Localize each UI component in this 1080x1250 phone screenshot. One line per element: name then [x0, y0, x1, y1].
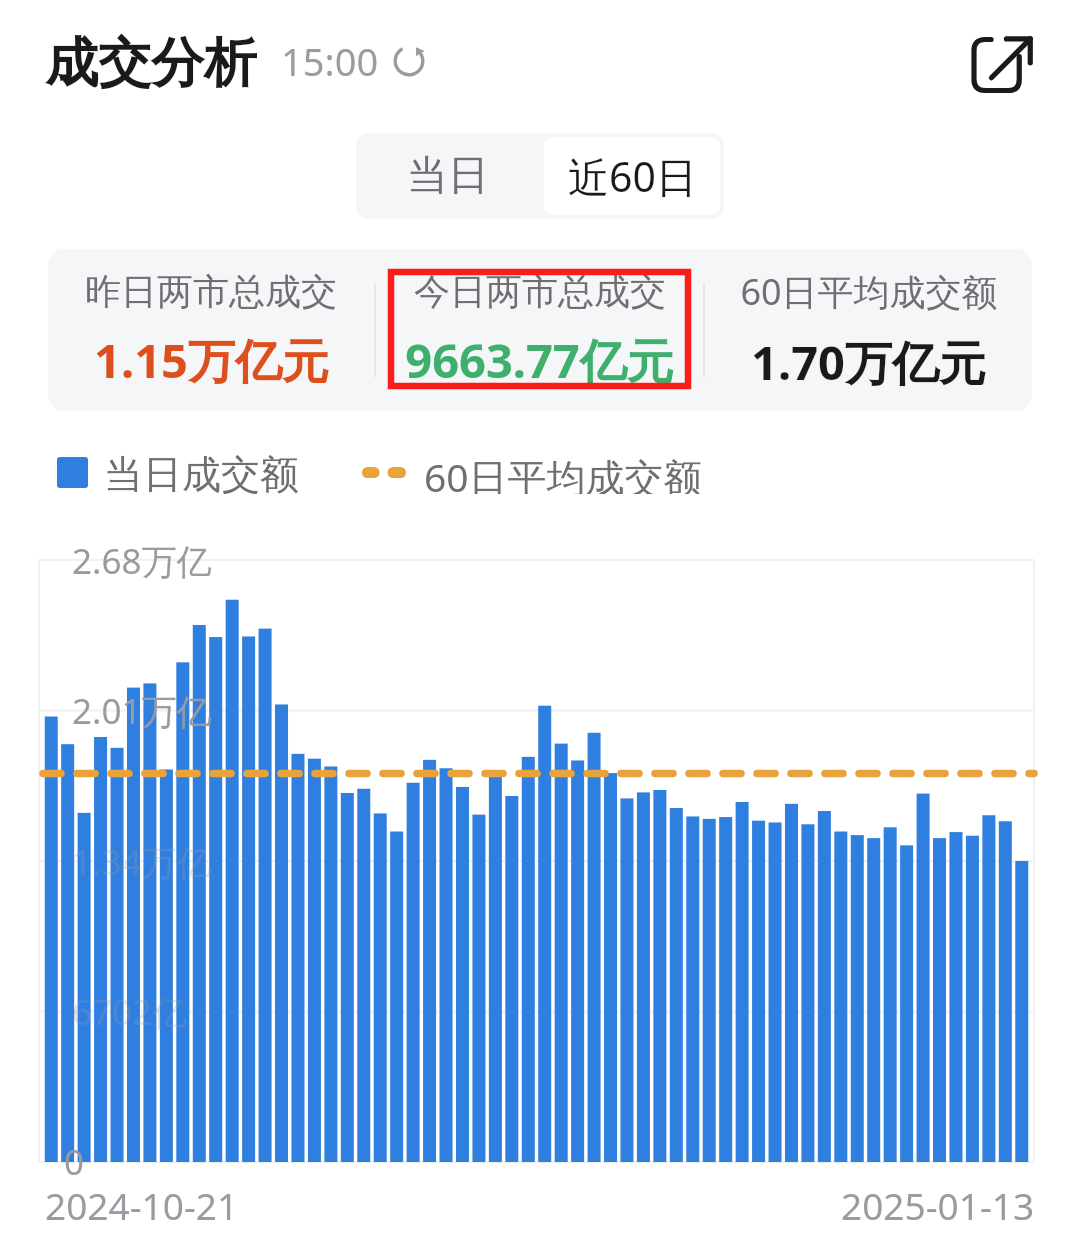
staticText: 60日平均成交额	[424, 450, 703, 494]
staticText: 今日两市总成交	[414, 269, 666, 314]
staticText: 2.68万亿	[72, 537, 212, 585]
staticText: 当日	[407, 150, 489, 202]
staticText: 1.34万亿	[72, 838, 212, 886]
staticText: 6702亿	[72, 988, 188, 1036]
button[interactable]: 当日	[356, 133, 540, 219]
button[interactable]: 今日两市总成交	[376, 249, 703, 411]
staticText: 成交分析	[45, 30, 257, 92]
staticText: 当日成交额	[104, 450, 299, 494]
staticText: 1.70万亿元	[751, 330, 986, 394]
staticText: 15:00	[281, 35, 379, 87]
staticText: 9663.77亿元	[405, 328, 674, 392]
staticText: 昨日两市总成交	[85, 269, 337, 314]
button[interactable]: 60日平均成交额	[705, 249, 1032, 411]
button[interactable]: Refresh	[391, 43, 427, 79]
staticText: 2.01万亿	[72, 687, 212, 735]
button[interactable]: 昨日两市总成交	[48, 249, 374, 411]
button[interactable]: 近60日	[544, 137, 720, 215]
staticText: 60日平均成交额	[740, 267, 998, 316]
staticText: 近60日	[568, 148, 697, 204]
staticText: 1.15万亿元	[94, 328, 329, 392]
staticText: 2025-01-13	[841, 1180, 1035, 1230]
staticText: 0	[64, 1138, 85, 1186]
button[interactable]: Share	[962, 24, 1044, 106]
staticText: 2024-10-21	[45, 1180, 239, 1230]
